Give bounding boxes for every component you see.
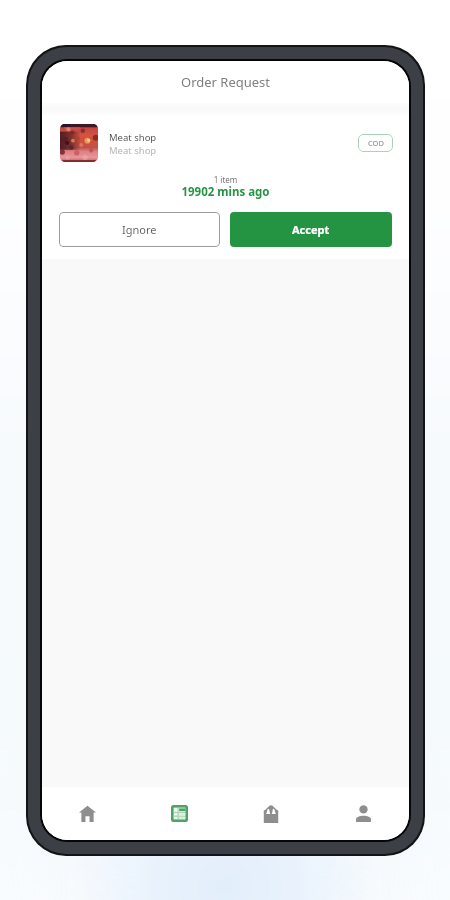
staticText: 19902 mins ago xyxy=(42,184,409,200)
staticText: Accept xyxy=(292,222,330,237)
staticText: Order Request xyxy=(181,73,271,91)
button[interactable]: Shop xyxy=(225,787,317,840)
button[interactable]: Profile xyxy=(317,787,409,840)
button[interactable]: COD xyxy=(358,134,393,152)
button[interactable]: Orders xyxy=(133,787,225,840)
staticText: Meat shop xyxy=(109,144,157,157)
staticText: 1 item xyxy=(42,174,409,185)
button[interactable]: Accept xyxy=(230,212,392,247)
button[interactable]: Home xyxy=(42,787,133,840)
staticText: Meat shop xyxy=(109,131,157,144)
button[interactable]: Ignore xyxy=(59,212,220,247)
staticText: Ignore xyxy=(122,222,157,237)
staticText: COD xyxy=(368,138,384,148)
